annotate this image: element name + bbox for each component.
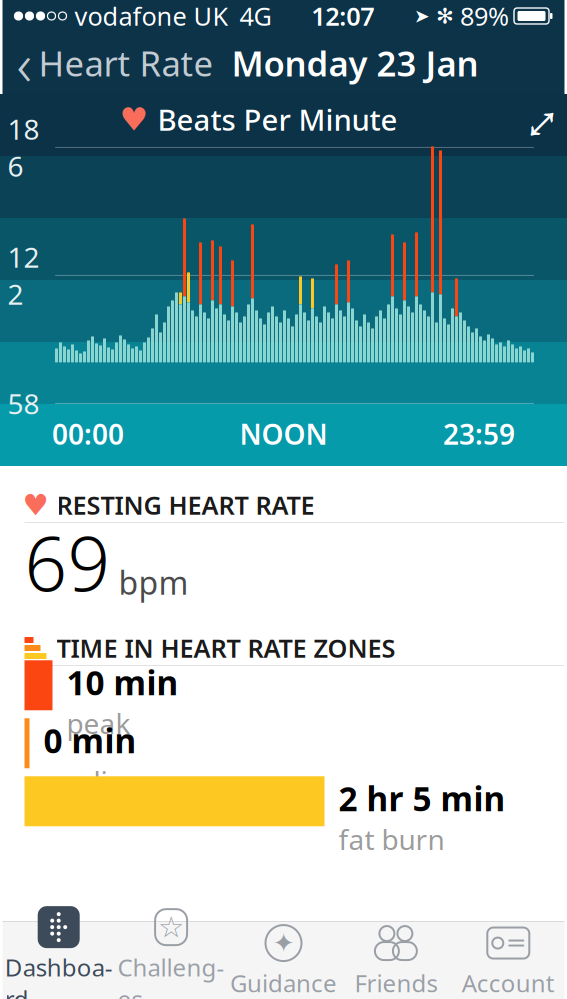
- staticText: Beats Per Minute: [157, 100, 397, 139]
- button[interactable]: ✦: [227, 922, 340, 999]
- staticText: Monday 23 Jan: [231, 40, 478, 86]
- button[interactable]: Expand chart: [517, 96, 567, 142]
- staticText: vodafone UK: [74, 0, 228, 33]
- staticText: ⤢: [525, 74, 559, 165]
- staticText: 00:00: [52, 415, 124, 453]
- staticText: TIME IN HEART RATE ZONES: [56, 631, 395, 665]
- staticText: Friends: [354, 967, 437, 999]
- staticText: 89%: [460, 0, 509, 33]
- staticText: ☆: [158, 910, 184, 944]
- staticText: bpm: [118, 561, 188, 604]
- button[interactable]: ☆: [115, 922, 227, 999]
- staticText: 4G: [239, 0, 271, 33]
- staticText: Account: [462, 967, 555, 999]
- staticText: 12:07: [311, 0, 374, 33]
- button[interactable]: Account: [452, 922, 564, 999]
- staticText: ♥: [119, 101, 148, 137]
- staticText: Dashboard: [5, 951, 113, 999]
- staticText: Guidance: [230, 967, 337, 999]
- staticText: ‹: [16, 24, 32, 102]
- staticText: ➤: [414, 5, 430, 27]
- staticText: ♥: [22, 488, 48, 522]
- staticText: 2 hr 5 min: [338, 776, 505, 821]
- staticText: Challenges: [118, 951, 225, 999]
- staticText: 10 min: [66, 660, 178, 705]
- staticText: NOON: [239, 415, 327, 453]
- button[interactable]: ‹: [2, 20, 213, 106]
- staticText: Heart Rate: [38, 40, 213, 86]
- staticText: 186: [7, 110, 39, 185]
- staticText: ✦: [272, 928, 294, 958]
- staticText: 23:59: [443, 415, 515, 453]
- staticText: ✻: [436, 4, 454, 28]
- staticText: peak: [66, 704, 130, 742]
- staticText: 122: [7, 238, 39, 313]
- button[interactable]: Friends: [340, 922, 452, 999]
- staticText: RESTING HEART RATE: [56, 488, 314, 522]
- staticText: 0 min: [43, 718, 136, 763]
- staticText: fat burn: [338, 820, 444, 858]
- button[interactable]: Dashboard: [2, 922, 115, 999]
- staticText: cardio: [43, 762, 124, 800]
- staticText: 69: [24, 512, 110, 612]
- staticText: 58: [7, 385, 39, 422]
